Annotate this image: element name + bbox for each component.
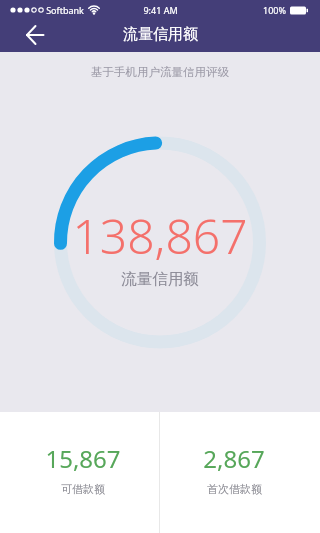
staticText: 基于手机用户流量信用评级: [91, 65, 229, 79]
staticText: 138,867: [72, 203, 248, 268]
staticText: 2,867: [203, 442, 265, 475]
staticText: 100%: [263, 4, 286, 16]
staticText: 9:41 AM: [143, 4, 178, 16]
staticText: 可借款额: [61, 482, 105, 496]
staticText: 首次借款额: [207, 482, 262, 496]
staticText: 15,867: [45, 442, 121, 475]
button[interactable]: [22, 22, 48, 48]
staticText: 流量信用额: [123, 25, 198, 44]
button[interactable]: 2,867: [160, 412, 320, 533]
staticText: 流量信用额: [121, 269, 199, 289]
button[interactable]: 15,867: [0, 412, 159, 533]
staticText: Softbank: [46, 4, 84, 16]
